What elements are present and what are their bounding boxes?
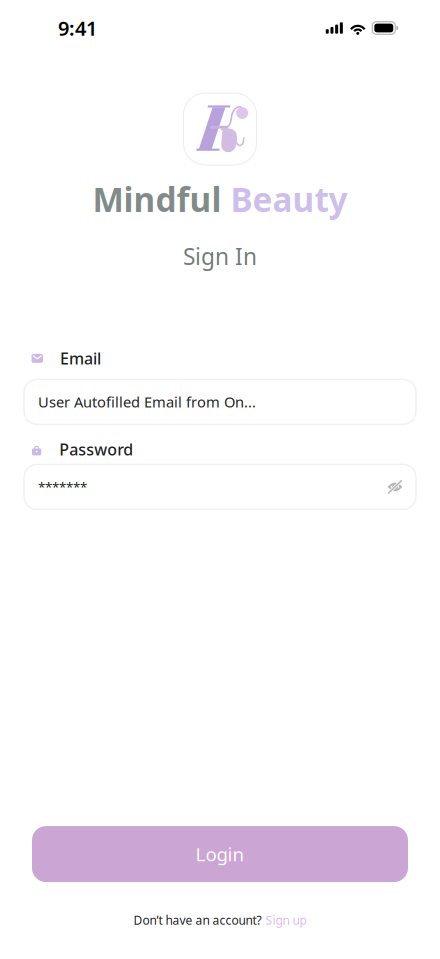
staticText: Login [195, 842, 244, 866]
button[interactable]: Show password [388, 480, 402, 494]
staticText: 9:41 [58, 15, 97, 41]
staticText: Password [59, 439, 133, 460]
button[interactable]: Login [32, 826, 408, 882]
staticText: Beauty [230, 177, 347, 221]
staticText: Sign up [265, 912, 306, 928]
staticText: Email [60, 348, 101, 369]
button[interactable]: Don’t have an account? [133, 912, 306, 928]
staticText: ******* [38, 478, 87, 496]
staticText: Sign In [183, 241, 257, 271]
staticText: User Autofilled Email from On... [38, 392, 256, 412]
staticText: Don’t have an account? [133, 912, 261, 928]
staticText: Mindful [92, 177, 230, 221]
